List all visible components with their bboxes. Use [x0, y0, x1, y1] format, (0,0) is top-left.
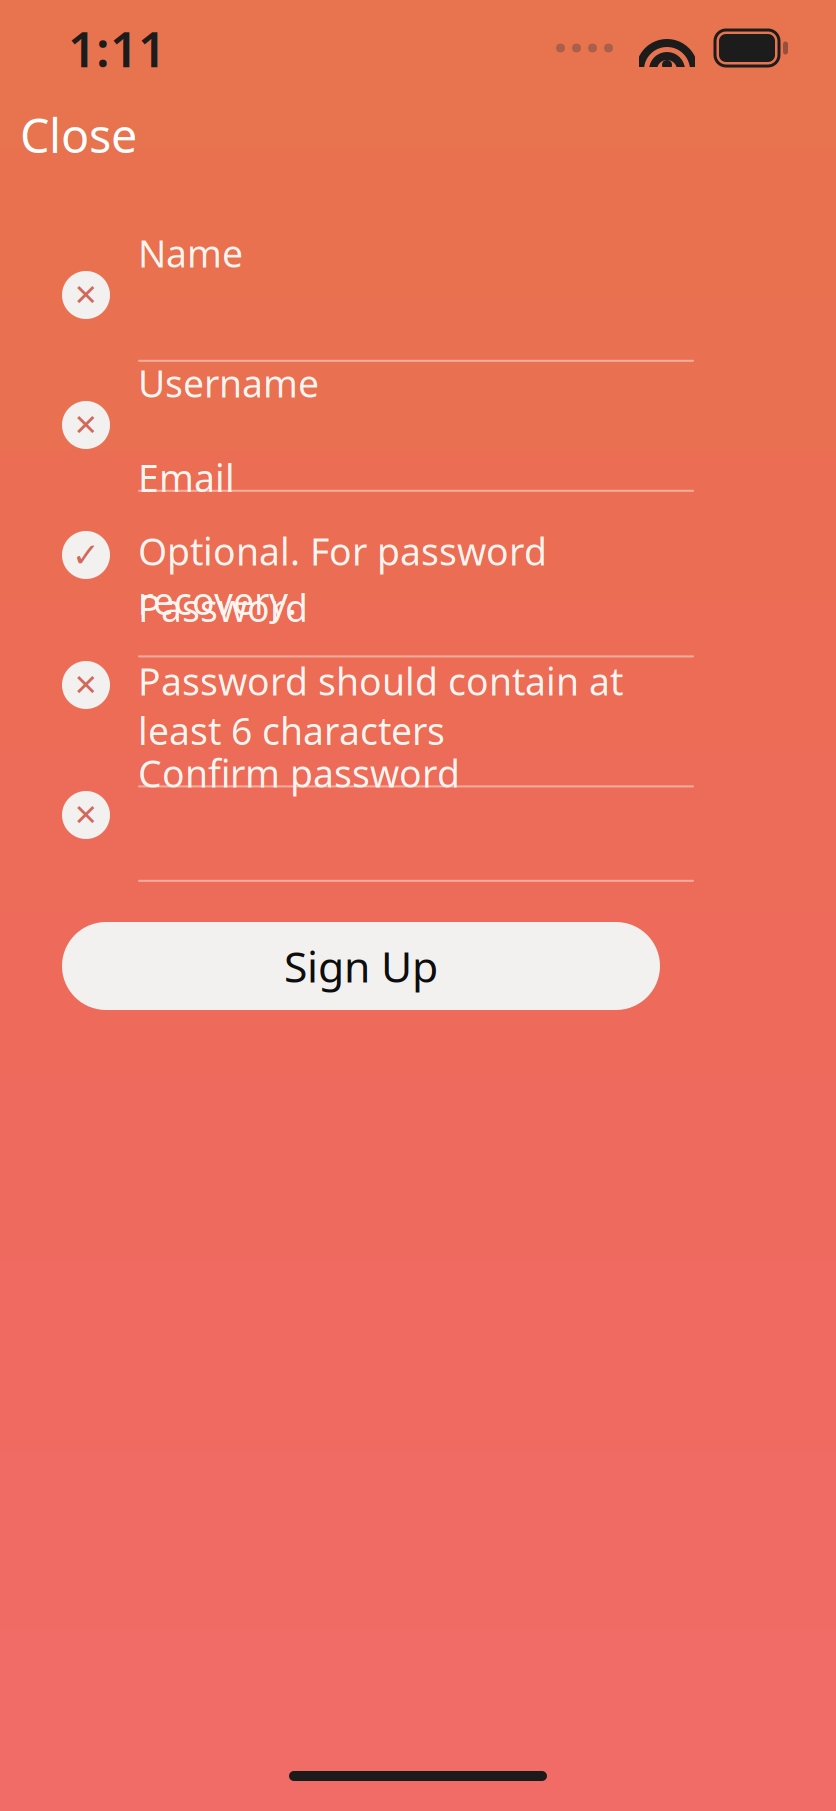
staticText: ✕ [73, 408, 98, 442]
button[interactable]: ✕ [0, 620, 836, 750]
staticText: Email [138, 453, 235, 502]
button[interactable]: Close [0, 92, 157, 178]
staticText: ✕ [73, 278, 98, 312]
staticText: Optional. For password recovery. [138, 526, 547, 625]
staticText: Sign Up [284, 938, 438, 994]
button[interactable]: ✓ [0, 490, 836, 620]
staticText: Password [138, 583, 308, 632]
staticText: Password should contain at least 6 chara… [138, 656, 623, 755]
button[interactable]: ✕ [0, 750, 836, 880]
staticText: ✓ [72, 536, 100, 574]
button[interactable]: ✕ [0, 230, 836, 360]
staticText: Close [20, 104, 137, 166]
button[interactable]: ✕ [0, 360, 836, 490]
staticText: Username [138, 358, 319, 408]
staticText: Confirm password [138, 748, 460, 798]
staticText: ✕ [73, 668, 98, 702]
staticText: Name [138, 228, 243, 278]
staticText: ✕ [73, 798, 98, 832]
button[interactable]: Sign Up [62, 922, 660, 1010]
staticText: 1:11 [68, 15, 166, 81]
